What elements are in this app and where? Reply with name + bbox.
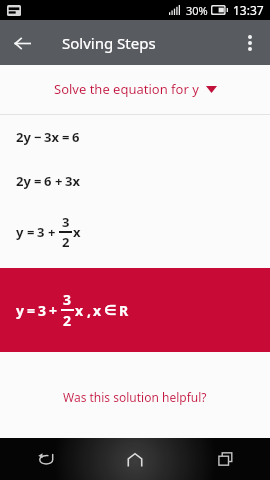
staticText: + — [48, 223, 56, 241]
staticText: 2y — [16, 128, 31, 146]
button[interactable]: Home — [90, 438, 180, 480]
staticText: R — [119, 301, 129, 320]
staticText: 3 — [63, 290, 72, 309]
staticText: y — [16, 301, 24, 320]
staticText: 6 — [44, 172, 52, 190]
staticText: 3 — [38, 301, 47, 320]
staticText: 2 — [62, 233, 70, 251]
staticText: Solving Steps — [62, 33, 156, 53]
button[interactable]: Back — [0, 21, 44, 65]
staticText: x — [75, 301, 84, 320]
staticText: 3x — [65, 172, 80, 190]
button[interactable]: y — [0, 268, 270, 352]
staticText: 3 — [37, 223, 45, 241]
staticText: 3 — [62, 213, 70, 231]
staticText: = — [27, 301, 36, 320]
staticText: = — [34, 172, 42, 190]
staticText: 13:37 — [233, 2, 264, 18]
staticText: − — [34, 128, 42, 146]
staticText: = — [27, 223, 35, 241]
staticText: 30% — [186, 3, 208, 18]
staticText: = — [62, 128, 70, 146]
button[interactable]: Was this solution helpful? — [0, 379, 270, 415]
staticText: + — [49, 301, 58, 320]
staticText: 2y — [16, 172, 31, 190]
staticText: 2 — [63, 311, 72, 330]
button[interactable]: Back — [0, 438, 90, 480]
button[interactable]: Solve the equation for y — [0, 65, 270, 113]
button[interactable]: Recent apps — [180, 438, 270, 480]
staticText: ∈ — [104, 302, 117, 318]
staticText: x — [93, 301, 102, 320]
staticText: 6 — [72, 128, 80, 146]
staticText: y — [16, 223, 24, 241]
staticText: , — [87, 301, 91, 320]
button[interactable]: More options — [230, 23, 270, 63]
staticText: 3x — [44, 128, 59, 146]
staticText: Solve the equation for y — [54, 80, 199, 98]
staticText: Was this solution helpful? — [63, 389, 207, 405]
staticText: + — [55, 172, 63, 190]
staticText: x — [73, 223, 81, 241]
